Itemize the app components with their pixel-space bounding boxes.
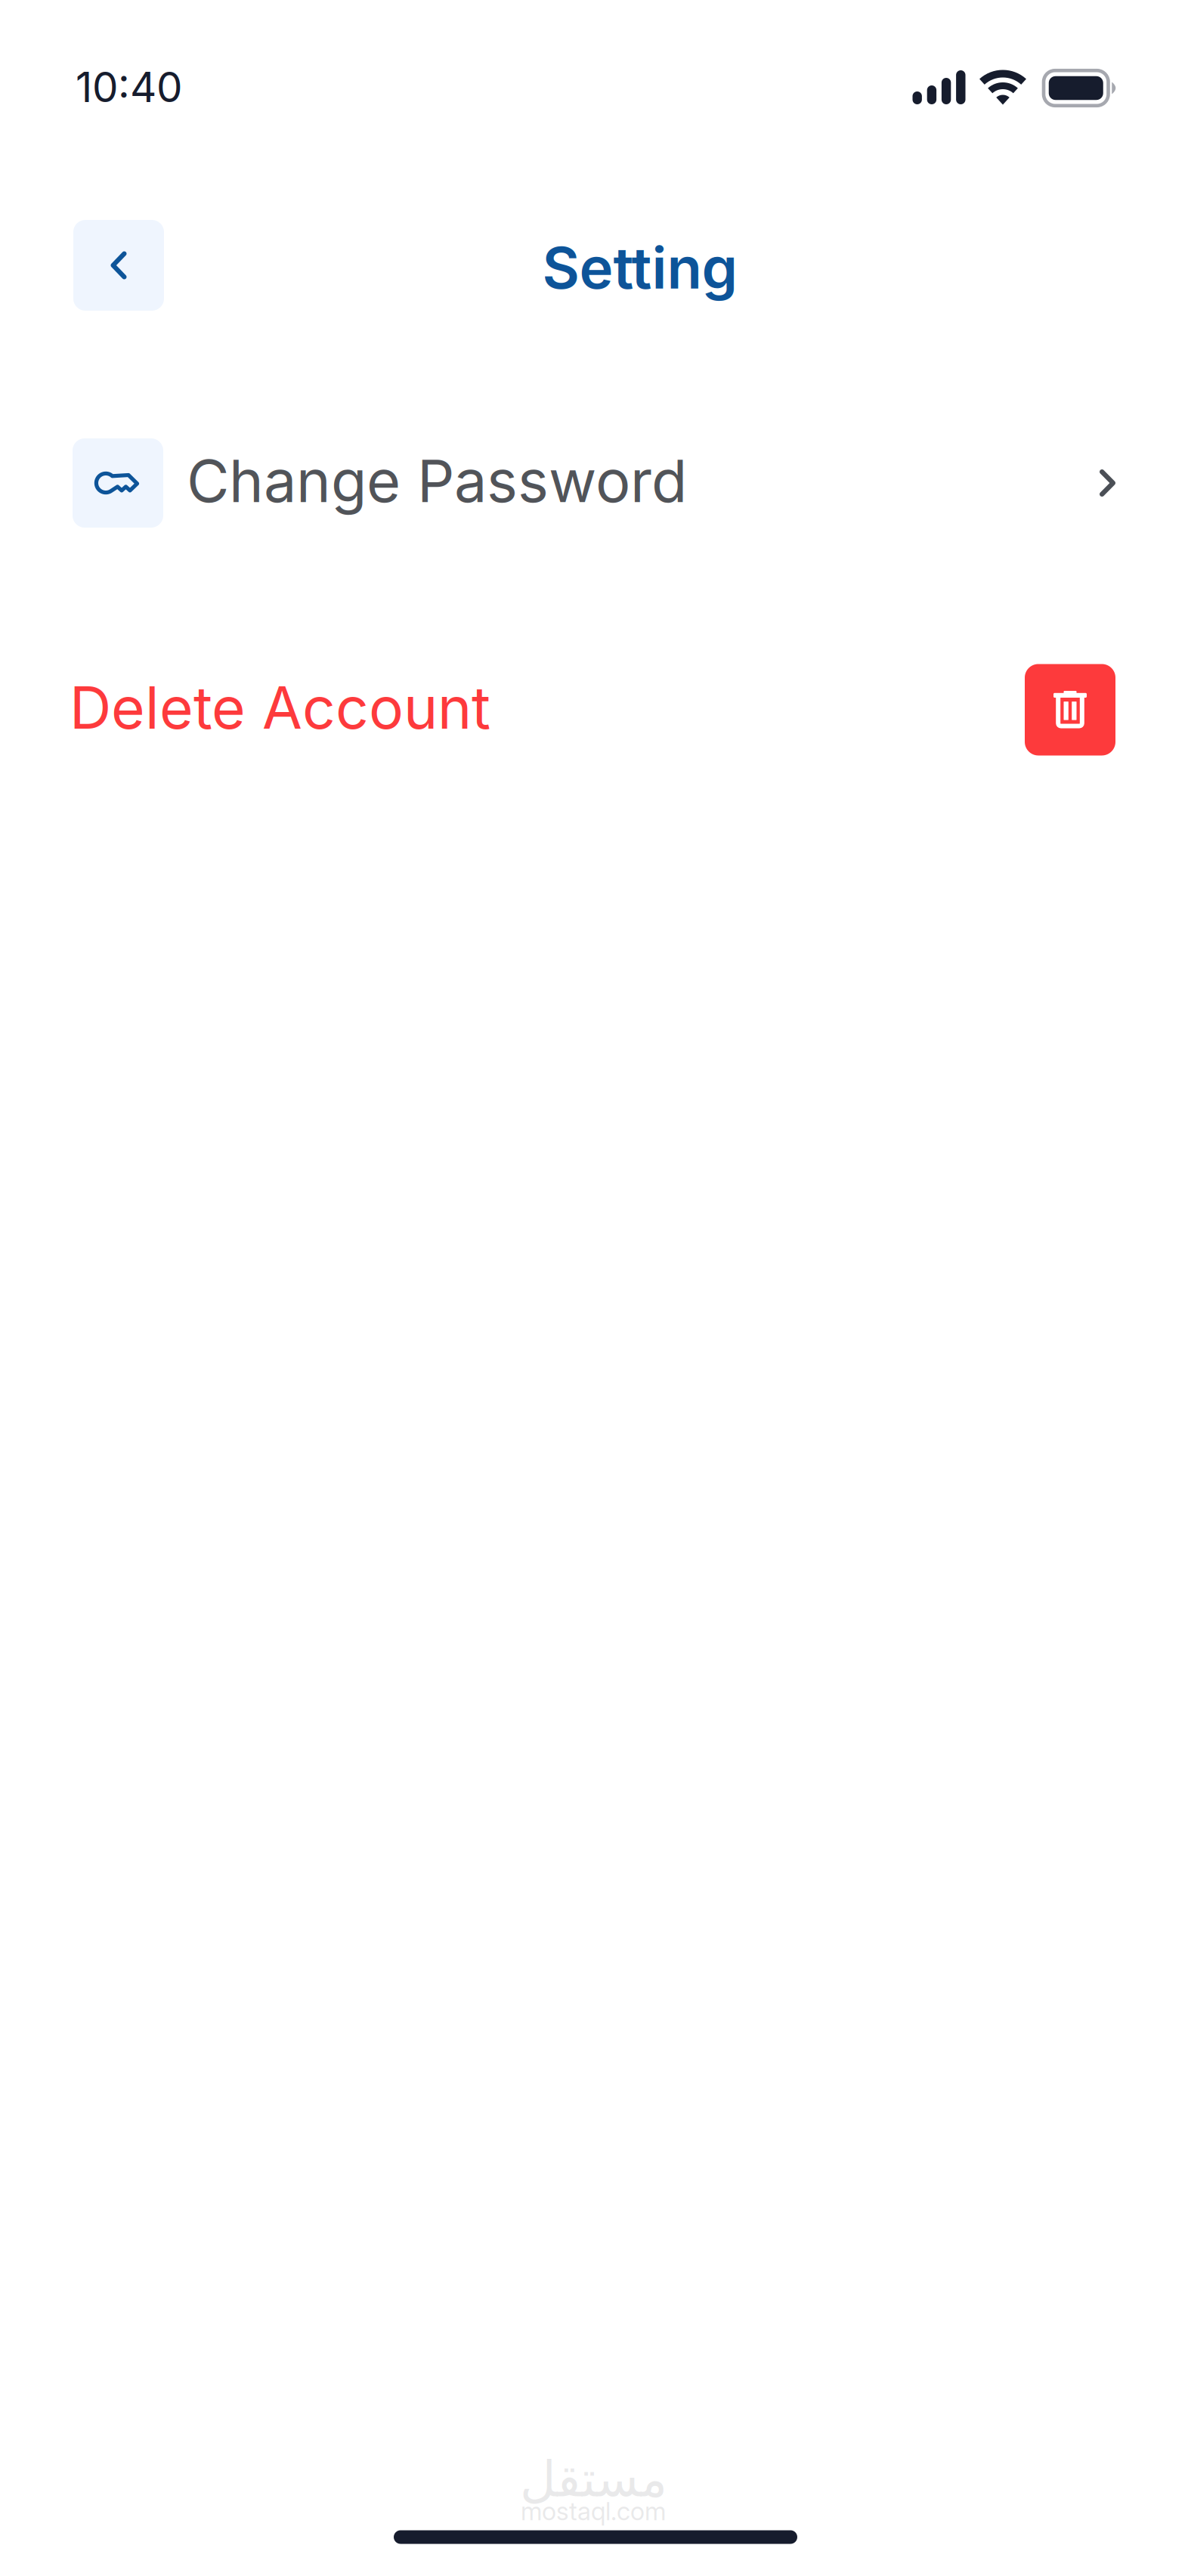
button[interactable]: Change Password [0,426,1188,540]
staticText: مستقل [520,2451,667,2508]
button[interactable]: Delete account [1025,664,1115,755]
button[interactable]: Back [73,220,164,311]
staticText: Setting [542,233,738,302]
staticText: 10:40 [76,62,182,112]
staticText: Change Password [187,445,687,516]
staticText: mostaql.com [521,2496,666,2526]
staticText: Delete Account [70,672,490,743]
button[interactable]: Delete Account [70,672,490,747]
